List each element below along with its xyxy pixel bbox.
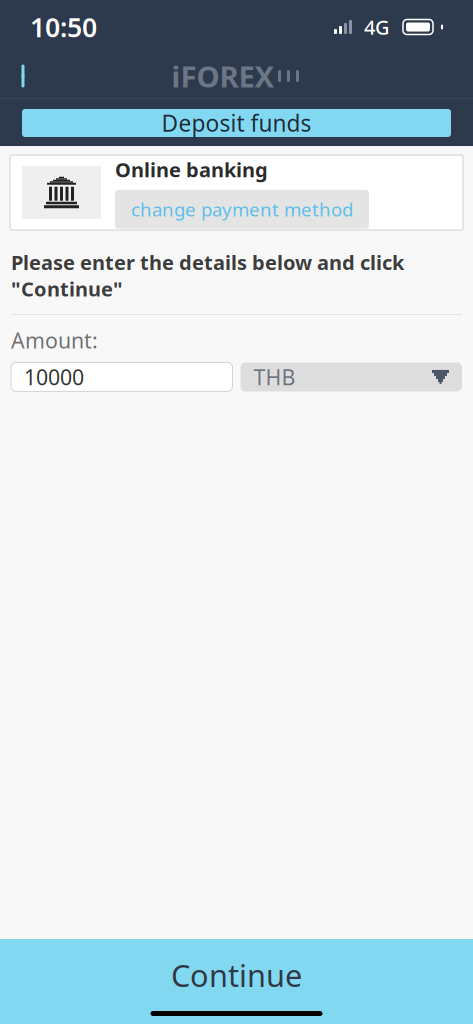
- button[interactable]: THB: [240, 362, 462, 391]
- staticText: iFOREX: [171, 56, 274, 95]
- staticText: Deposit funds: [161, 108, 311, 138]
- staticText: 10:50: [30, 9, 97, 45]
- button[interactable]: Continue: [0, 939, 473, 1024]
- staticText: Amount:: [11, 326, 98, 354]
- staticText: change payment method: [131, 197, 353, 222]
- button[interactable]: 10000: [11, 362, 232, 391]
- staticText: 10000: [24, 363, 84, 391]
- staticText: Please enter the details below and click…: [11, 249, 404, 302]
- staticText: Online banking: [115, 156, 268, 183]
- staticText: Continue: [171, 955, 302, 995]
- staticText: 4G: [364, 14, 390, 40]
- button[interactable]: Deposit funds: [22, 109, 451, 137]
- button[interactable]: Back: [0, 55, 46, 97]
- staticText: THB: [253, 363, 295, 391]
- button[interactable]: change payment method: [115, 190, 369, 229]
